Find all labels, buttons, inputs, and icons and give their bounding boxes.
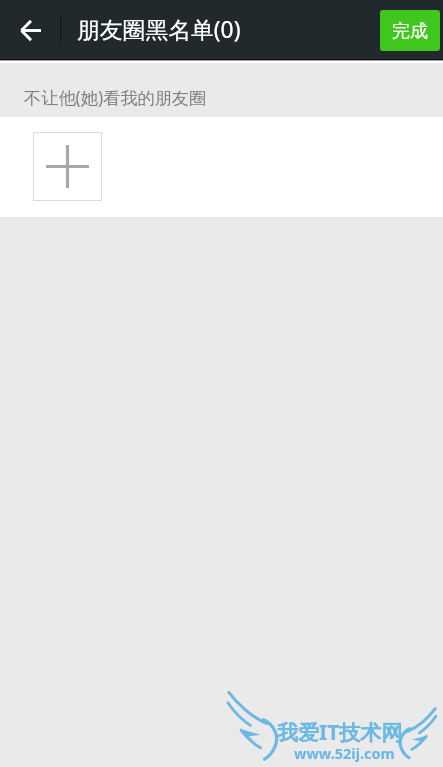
staticText: www.52ij.com — [294, 743, 395, 763]
staticText: 我爱IT技术网 — [277, 718, 403, 747]
button[interactable]: 完成 — [380, 10, 440, 51]
button[interactable]: Add member — [33, 132, 102, 201]
staticText: 完成 — [392, 20, 428, 43]
staticText: 不让他(她)看我的朋友圈 — [24, 86, 207, 109]
button[interactable]: Back — [0, 0, 60, 59]
staticText: 朋友圈黑名单(0) — [77, 14, 241, 45]
